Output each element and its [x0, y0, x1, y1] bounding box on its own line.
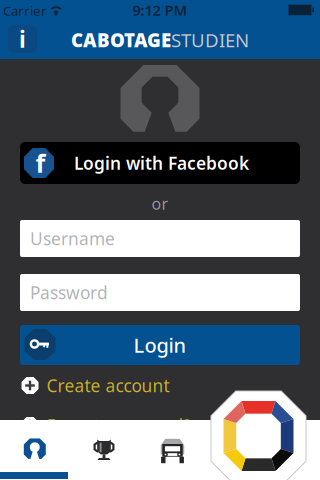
button[interactable]: CabotageStudien: [205, 388, 320, 480]
staticText: i: [19, 24, 26, 54]
button[interactable]: Password: [20, 274, 300, 311]
staticText: Create account: [46, 374, 169, 397]
staticText: Password: [30, 281, 108, 304]
button[interactable]: ?: [21, 414, 301, 436]
button[interactable]: Login with Facebook: [20, 142, 300, 184]
staticText: f: [35, 146, 45, 180]
staticText: STUDIEN: [171, 28, 249, 52]
button[interactable]: Profile: [0, 420, 71, 480]
staticText: Forgot password?: [46, 414, 191, 437]
staticText: 9:12 PM: [132, 0, 187, 20]
button[interactable]: Rankings: [71, 420, 142, 480]
staticText: Login with Facebook: [74, 151, 249, 174]
staticText: Carrier: [3, 2, 47, 19]
staticText: or: [151, 193, 168, 214]
button[interactable]: Login: [20, 325, 300, 365]
staticText: Username: [30, 227, 115, 250]
staticText: ?: [26, 415, 34, 436]
staticText: CABOTAGE: [71, 28, 171, 52]
button[interactable]: Username: [20, 220, 300, 257]
button[interactable]: Trucks: [142, 420, 213, 480]
button[interactable]: Create account: [21, 374, 301, 396]
staticText: Login: [133, 332, 186, 358]
button[interactable]: Info: [8, 25, 37, 53]
